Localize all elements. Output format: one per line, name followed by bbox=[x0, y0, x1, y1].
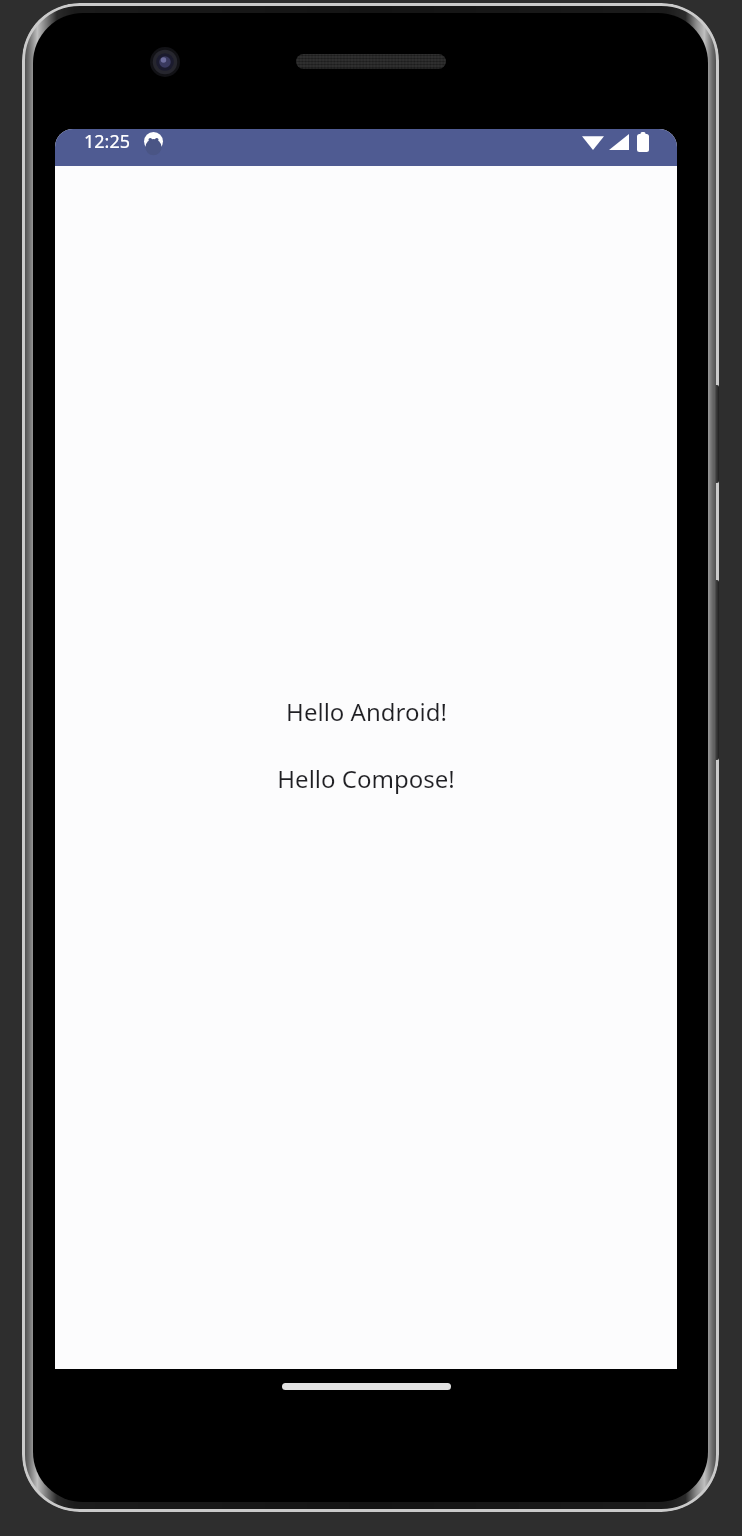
staticText: 12:25 bbox=[84, 129, 131, 154]
button[interactable]: Hello Android! bbox=[286, 695, 447, 728]
button[interactable]: Hello Compose! bbox=[277, 762, 455, 795]
button[interactable]: Volume bbox=[714, 580, 719, 760]
button[interactable]: Power bbox=[714, 385, 719, 483]
button[interactable]: Home gesture bar bbox=[282, 1383, 451, 1390]
